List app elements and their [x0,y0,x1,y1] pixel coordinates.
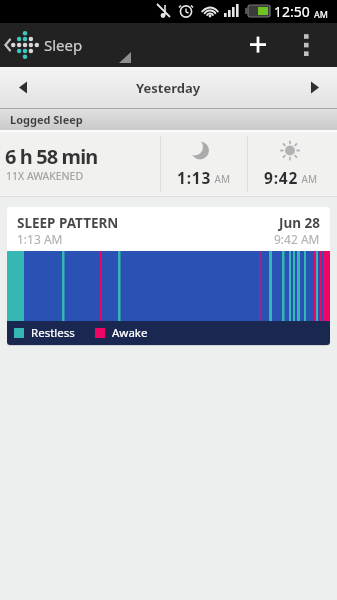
staticText: Sleep [44,35,83,55]
staticText: 1:13 [177,167,212,188]
staticText: AM [314,8,328,20]
button[interactable] [236,23,280,67]
staticText: 12:50 [274,2,310,21]
staticText: Yesterday [136,79,201,97]
staticText: SLEEP PATTERN [17,214,119,232]
staticText: 1:13 AM [17,231,63,247]
staticText: Restless [31,325,75,341]
staticText: Logged Sleep [10,112,83,127]
staticText: 11X AWAKENED [6,169,84,183]
staticText: AM [299,172,318,186]
button[interactable] [293,67,337,108]
staticText: 9:42 [264,167,299,188]
staticText: AM [212,172,231,186]
staticText: 6 h 58 min [5,143,98,170]
button[interactable]: Sleep [0,23,134,67]
staticText: 9:42 AM [274,231,320,247]
button[interactable] [290,23,330,67]
staticText: Jun 28 [279,214,320,232]
staticText: Awake [112,325,148,341]
button[interactable]: SLEEP PATTERN [7,207,330,345]
button[interactable] [0,67,44,108]
